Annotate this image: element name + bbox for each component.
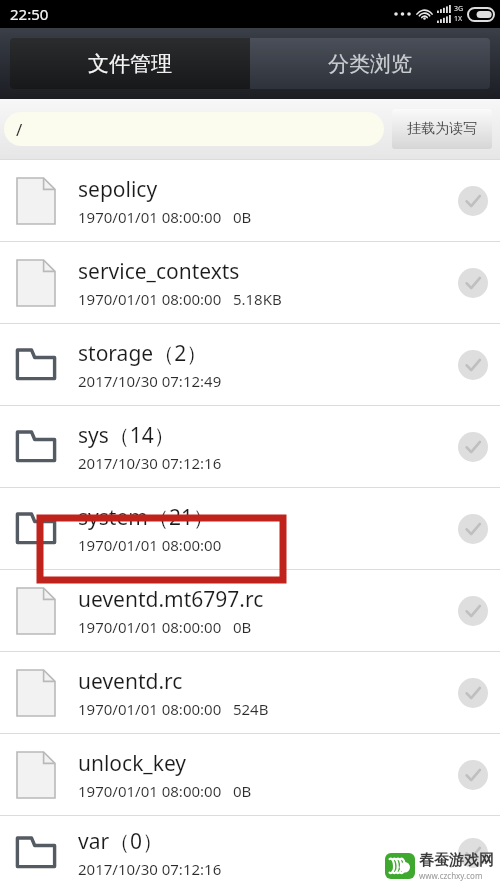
button[interactable]: Select — [446, 420, 500, 474]
button[interactable]: 文件管理 — [10, 38, 250, 89]
staticText: 2017/10/30 07:12:16 — [78, 859, 222, 879]
button[interactable]: sys（14） — [0, 406, 500, 487]
button[interactable]: Select — [446, 256, 500, 310]
button[interactable]: var（0） — [0, 816, 500, 889]
staticText: ueventd.rc — [78, 667, 183, 696]
staticText: sys（14） — [78, 421, 175, 450]
button[interactable]: service_contexts — [0, 242, 500, 323]
button[interactable]: storage（2） — [0, 324, 500, 405]
staticText: 3G — [454, 4, 464, 14]
staticText: sepolicy — [78, 175, 158, 204]
button[interactable]: ueventd.mt6797.rc — [0, 570, 500, 651]
staticText: 1970/01/01 08:00:00 5.18KB — [78, 289, 282, 309]
staticText: www.czchxy.com — [419, 870, 483, 881]
staticText: 1970/01/01 08:00:00 524B — [78, 699, 269, 719]
button[interactable]: Select — [446, 748, 500, 802]
staticText: 1970/01/01 08:00:00 0B — [78, 781, 252, 801]
button[interactable]: Select — [446, 174, 500, 228]
staticText: storage（2） — [78, 339, 208, 368]
button[interactable]: Select — [446, 584, 500, 638]
staticText: 22:50 — [10, 4, 49, 24]
staticText: service_contexts — [78, 257, 240, 286]
button[interactable]: ueventd.rc — [0, 652, 500, 733]
staticText: 挂载为读写 — [407, 120, 477, 138]
staticText: 春蚕游戏网 — [419, 851, 494, 870]
button[interactable]: sepolicy — [0, 160, 500, 241]
staticText: 1970/01/01 08:00:00 0B — [78, 207, 252, 227]
button[interactable]: Select — [446, 826, 500, 880]
staticText: 文件管理 — [88, 51, 172, 77]
staticText: 1X — [454, 14, 463, 24]
button[interactable]: / — [4, 112, 384, 146]
button[interactable]: system（21） — [0, 488, 500, 569]
staticText: system（21） — [78, 503, 214, 532]
staticText: 1970/01/01 08:00:00 — [78, 535, 222, 555]
button[interactable]: Select — [446, 666, 500, 720]
staticText: / — [16, 118, 23, 141]
staticText: 1970/01/01 08:00:00 0B — [78, 617, 252, 637]
staticText: ueventd.mt6797.rc — [78, 585, 264, 614]
button[interactable]: unlock_key — [0, 734, 500, 815]
button[interactable]: Select — [446, 338, 500, 392]
staticText: unlock_key — [78, 749, 187, 778]
staticText: 2017/10/30 07:12:16 — [78, 453, 222, 473]
staticText: 分类浏览 — [328, 51, 412, 77]
staticText: 2017/10/30 07:12:49 — [78, 371, 222, 391]
button[interactable]: 分类浏览 — [250, 38, 490, 89]
staticText: var（0） — [78, 827, 164, 856]
button[interactable]: Select — [446, 502, 500, 556]
button[interactable]: 挂载为读写 — [392, 109, 492, 149]
